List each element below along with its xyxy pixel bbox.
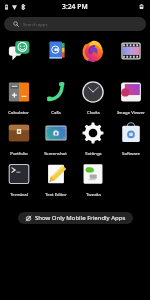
button[interactable]: Calculator bbox=[0, 81, 37, 115]
staticText: 3:24 PM bbox=[62, 2, 88, 11]
staticText: Software bbox=[122, 150, 140, 156]
staticText: Show Only Mobile Friendly Apps bbox=[35, 214, 126, 222]
button[interactable]: Screenshot bbox=[37, 122, 74, 156]
button[interactable]: Software bbox=[112, 122, 150, 156]
button[interactable] bbox=[112, 40, 150, 68]
button[interactable]: Text Editor bbox=[37, 163, 74, 197]
staticText: Tweaks bbox=[86, 191, 101, 197]
button[interactable]: Calls bbox=[37, 81, 74, 115]
button[interactable]: Search apps bbox=[4, 17, 146, 31]
staticText: Portfolio bbox=[10, 150, 28, 156]
button[interactable]: Portfolio bbox=[0, 122, 37, 156]
staticText: Calculator bbox=[8, 109, 29, 115]
button[interactable] bbox=[0, 40, 37, 68]
staticText: Settings bbox=[85, 150, 102, 156]
button[interactable]: Show Only Mobile Friendly Apps bbox=[18, 212, 133, 224]
staticText: Terminal bbox=[10, 191, 28, 197]
staticText: Screenshot bbox=[44, 150, 67, 156]
button[interactable]: Image Viewer bbox=[112, 81, 150, 115]
button[interactable]: Settings bbox=[74, 122, 112, 156]
button[interactable] bbox=[74, 40, 112, 68]
staticText: Clocks bbox=[87, 109, 100, 115]
button[interactable] bbox=[37, 40, 74, 68]
button[interactable]: Clocks bbox=[74, 81, 112, 115]
button[interactable]: Tweaks bbox=[74, 163, 112, 197]
staticText: Text Editor bbox=[45, 191, 67, 197]
staticText: Search apps bbox=[23, 21, 48, 27]
staticText: Calls bbox=[51, 109, 61, 115]
staticText: Image Viewer bbox=[117, 109, 145, 115]
button[interactable]: Terminal bbox=[0, 163, 37, 197]
